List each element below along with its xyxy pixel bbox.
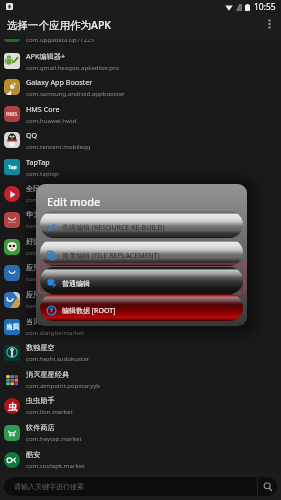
button[interactable]: 应用商店 bbox=[0, 286, 281, 313]
button[interactable]: 高级编辑 (RESOURCE RE-BUILD) bbox=[40, 211, 243, 238]
button[interactable]: 全民小视频 bbox=[0, 180, 281, 207]
button[interactable]: 应用宝 bbox=[0, 259, 281, 286]
staticText: 虫 bbox=[8, 401, 17, 412]
staticText: com.upgadata.up77223 bbox=[26, 35, 94, 43]
staticText: Galaxy App Booster bbox=[26, 77, 93, 87]
button[interactable]: 简单编辑 (FILE REPLACEMENT) bbox=[40, 239, 243, 266]
staticText: Edit mode bbox=[47, 194, 101, 209]
staticText: com.lion.market bbox=[26, 407, 73, 415]
staticText: Tap bbox=[8, 164, 17, 171]
staticText: 当贝市场 bbox=[26, 317, 55, 326]
staticText: com.tencent.mobileqq bbox=[26, 142, 91, 150]
staticText: APK编辑器+ bbox=[26, 51, 66, 61]
button[interactable]: 酷安 bbox=[0, 446, 281, 473]
staticText: com.coolapk.market bbox=[26, 461, 85, 469]
staticText: 请输入关键字进行搜索 bbox=[14, 482, 257, 491]
button[interactable]: QQ bbox=[0, 126, 281, 153]
staticText: 消灭星星经典 bbox=[26, 370, 70, 379]
staticText: com.gh.gamecenter bbox=[26, 248, 84, 256]
staticText: 数独星空 bbox=[26, 343, 55, 352]
staticText: 高级编辑 (RESOURCE RE-BUILD) bbox=[62, 223, 165, 233]
staticText: com.bbk.appstore bbox=[26, 301, 78, 309]
staticText: 酷安 bbox=[26, 450, 41, 459]
button[interactable]: 虫 bbox=[0, 392, 281, 419]
staticText: HMS bbox=[6, 111, 18, 118]
staticText: 当贝 bbox=[6, 323, 19, 331]
staticText: 10:55 bbox=[254, 1, 276, 13]
staticText: com.heytap.market bbox=[26, 434, 82, 442]
button[interactable]: 消灭星星经典 bbox=[0, 366, 281, 393]
button[interactable]: Tap bbox=[0, 153, 281, 180]
staticText: com.huawei.hwid bbox=[26, 116, 77, 124]
staticText: 好游快爆 bbox=[26, 237, 55, 246]
staticText: 选择一个应用作为APK bbox=[7, 18, 111, 32]
staticText: 虫虫助手 bbox=[26, 396, 55, 405]
button[interactable]: 软件商店 bbox=[0, 419, 281, 446]
staticText: 普通编辑 bbox=[62, 279, 90, 288]
button[interactable]: 普通编辑 bbox=[40, 267, 243, 294]
button[interactable]: 华为视频 bbox=[0, 206, 281, 233]
button[interactable]: 当贝 bbox=[0, 313, 281, 340]
staticText: com.hezhi.sudokustar bbox=[26, 354, 90, 362]
staticText: 应用升级 bbox=[26, 24, 55, 33]
button[interactable]: HMS bbox=[0, 100, 281, 127]
staticText: com.samsung.android.appbooster bbox=[26, 89, 125, 97]
button[interactable]: 好游快爆 bbox=[0, 233, 281, 260]
staticText: 全民小视频 bbox=[26, 184, 62, 193]
staticText: com.taptap bbox=[26, 169, 59, 177]
staticText: com.aimpoint.popstar.yyb bbox=[26, 381, 101, 389]
staticText: com.huawei.himovie bbox=[26, 221, 86, 229]
staticText: 应用宝 bbox=[26, 263, 48, 272]
button[interactable]: 数独星空 bbox=[0, 339, 281, 366]
staticText: com.baidu.minivideo bbox=[26, 195, 86, 203]
staticText: TapTap bbox=[26, 157, 50, 167]
button[interactable]: 编辑数据 [ROOT] bbox=[40, 294, 243, 321]
button[interactable]: 应用升级 bbox=[0, 20, 281, 47]
staticText: QQ bbox=[26, 130, 38, 140]
staticText: 应用商店 bbox=[26, 290, 55, 299]
button[interactable]: Galaxy App Booster bbox=[0, 73, 281, 100]
button[interactable]: Search bbox=[258, 477, 277, 496]
staticText: com.gmail.heagoo.apkeditor.pro bbox=[26, 63, 120, 71]
staticText: 华为视频 bbox=[26, 210, 55, 219]
button[interactable]: APK编辑器+ bbox=[0, 47, 281, 74]
button[interactable]: More options bbox=[262, 16, 276, 32]
staticText: 简单编辑 (FILE REPLACEMENT) bbox=[62, 251, 160, 261]
staticText: 软件商店 bbox=[26, 423, 55, 432]
staticText: com.dangbeimarket bbox=[26, 328, 84, 336]
staticText: HMS Core bbox=[26, 104, 60, 114]
staticText: 编辑数据 [ROOT] bbox=[62, 306, 116, 316]
staticText: com.tencent.android.qqdownloader bbox=[26, 274, 130, 282]
button[interactable]: 请输入关键字进行搜索 bbox=[4, 477, 277, 496]
